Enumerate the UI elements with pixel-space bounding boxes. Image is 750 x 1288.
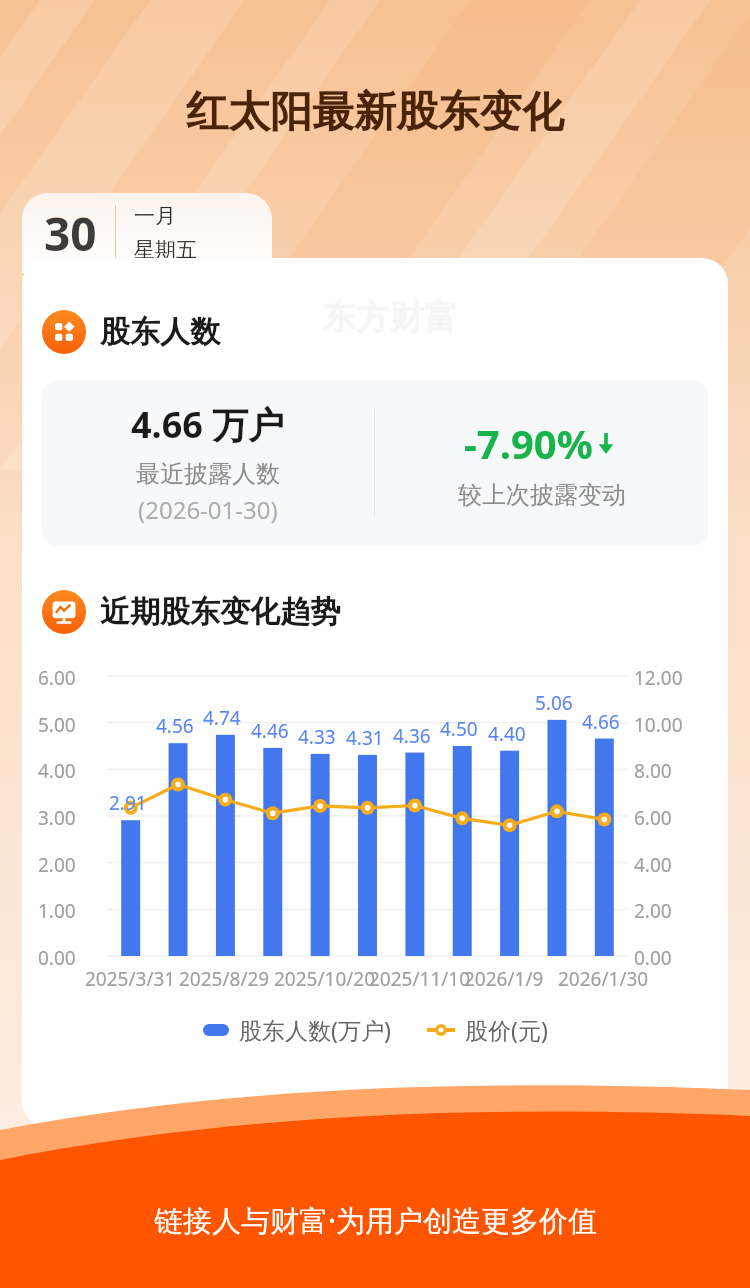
button[interactable]: 近期股东变化趋势 (42, 590, 728, 634)
staticText: 5.00 (38, 712, 76, 738)
staticText: 4.36 (393, 723, 431, 749)
staticText: -7.90% (464, 416, 593, 470)
staticText: 4.40 (488, 721, 526, 747)
staticText: 一月 (134, 203, 176, 229)
staticText: 2.00 (634, 898, 672, 924)
staticText: 链接人与财富·为用户创造更多价值 (154, 1200, 597, 1240)
staticText: 2026/1/30 (558, 966, 649, 992)
staticText: 股东人数 (100, 313, 220, 351)
button[interactable]: 股东人数 (42, 310, 728, 354)
staticText: 6.00 (38, 665, 76, 691)
staticText: 股东人数(万户) (239, 1014, 391, 1045)
staticText: 东方财富 (322, 296, 458, 339)
staticText: 2.00 (38, 852, 76, 878)
staticText: 8.00 (634, 758, 672, 784)
staticText: 近期股东变化趋势 (100, 593, 340, 631)
staticText: 1.00 (38, 898, 76, 924)
staticText: 10.00 (634, 712, 683, 738)
staticText: 2.91 (109, 790, 147, 816)
staticText: 3.00 (38, 805, 76, 831)
staticText: 4.31 (346, 725, 384, 751)
staticText: 4.50 (440, 716, 478, 742)
button[interactable]: 4.66 万户 (42, 380, 708, 546)
other: 股东人数 (42, 310, 86, 354)
staticText: 红太阳最新股东变化 (0, 86, 750, 139)
staticText: 星期五 (134, 237, 197, 263)
staticText: 30 (44, 202, 97, 265)
staticText: 较上次披露变动 (458, 480, 626, 510)
button[interactable]: 股价(元) (427, 1014, 548, 1045)
staticText: 2025/8/29 (179, 966, 270, 992)
staticText: 0.00 (634, 945, 672, 971)
staticText: 5.06 (535, 690, 573, 716)
button[interactable]: 股东人数(万户) (203, 1014, 391, 1045)
staticText: 4.66 (582, 709, 620, 735)
staticText: 4.74 (203, 705, 241, 731)
staticText: 最近披露人数 (136, 459, 280, 489)
staticText: 2026/1/9 (464, 966, 544, 992)
other: 近期股东变化趋势 (42, 590, 86, 634)
staticText: 4.46 (251, 718, 289, 744)
staticText: 4.66 万户 (131, 400, 285, 449)
staticText: 4.00 (38, 758, 76, 784)
staticText: 6.00 (634, 805, 672, 831)
staticText: 4.00 (634, 852, 672, 878)
staticText: 0.00 (38, 945, 76, 971)
staticText: 2025/10/20 (274, 966, 376, 992)
staticText: 2025/3/31 (85, 966, 176, 992)
staticText: (2026-01-30) (138, 493, 278, 526)
staticText: 2025/11/10 (369, 966, 471, 992)
staticText: 4.56 (156, 713, 194, 739)
staticText: 股价(元) (465, 1014, 548, 1045)
staticText: 12.00 (634, 665, 683, 691)
staticText: 4.33 (298, 724, 336, 750)
